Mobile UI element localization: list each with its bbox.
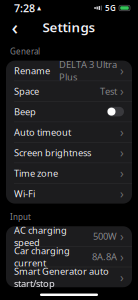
staticText: Auto timeout xyxy=(14,126,71,138)
staticText: Settings xyxy=(42,18,95,36)
button[interactable]: Wi-Fi xyxy=(6,184,132,204)
button[interactable]: Smart Generator auto start/stop xyxy=(6,267,132,287)
button[interactable]: Auto timeout xyxy=(6,122,132,142)
staticText: › xyxy=(120,145,124,161)
staticText: Car charging current xyxy=(14,244,70,269)
staticText: 7:28 xyxy=(14,1,35,15)
staticText: › xyxy=(120,165,124,181)
staticText: Input xyxy=(10,212,31,222)
staticText: DELTA 3 Ultra Plus xyxy=(59,58,117,83)
staticText: › xyxy=(120,228,124,244)
staticText: Test xyxy=(100,85,117,97)
staticText: › xyxy=(120,186,124,202)
staticText: Screen brightness xyxy=(14,146,91,159)
staticText: Wi-Fi xyxy=(14,187,35,200)
button[interactable]: AC charging speed xyxy=(6,226,132,246)
button[interactable]: Time zone xyxy=(6,163,132,183)
button[interactable]: Screen brightness xyxy=(6,143,132,163)
staticText: Space xyxy=(14,85,39,97)
staticText: › xyxy=(120,124,124,140)
staticText: Time zone xyxy=(14,167,58,179)
staticText: Rename xyxy=(14,64,50,77)
button[interactable]: Space xyxy=(6,81,132,101)
staticText: ▲ xyxy=(37,5,41,11)
button[interactable]: Back xyxy=(4,16,26,38)
staticText: 8A.8A xyxy=(92,251,117,263)
staticText: General xyxy=(10,46,40,57)
button[interactable]: Rename xyxy=(6,61,132,81)
staticText: › xyxy=(120,269,124,285)
button[interactable]: Car charging current xyxy=(6,247,132,267)
staticText: 500W xyxy=(93,230,117,242)
button[interactable]: Beep xyxy=(6,102,132,122)
staticText: ‹ xyxy=(11,14,18,40)
staticText: Smart Generator auto start/stop xyxy=(14,265,109,290)
staticText: › xyxy=(120,83,124,99)
staticText: 5G xyxy=(105,3,116,13)
staticText: Beep xyxy=(14,105,36,118)
staticText: › xyxy=(120,249,124,265)
staticText: AC charging speed xyxy=(14,224,67,249)
staticText: › xyxy=(120,63,124,79)
